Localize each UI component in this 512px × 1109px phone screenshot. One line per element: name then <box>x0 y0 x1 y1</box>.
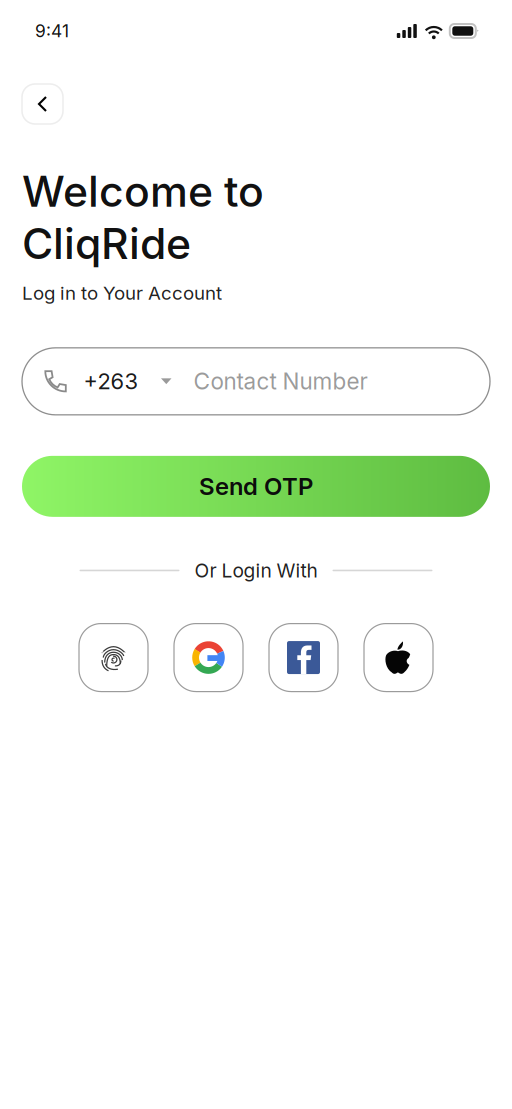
button[interactable]: Send OTP <box>22 456 490 517</box>
staticText: 9:41 <box>35 20 69 41</box>
button[interactable]: Back <box>22 84 63 124</box>
staticText: Contact Number <box>193 368 367 395</box>
staticText: Welcome to <box>22 165 264 217</box>
staticText: Log in to Your Account <box>22 282 222 304</box>
staticText: Send OTP <box>199 472 313 501</box>
button[interactable]: Sign in with Facebook <box>269 624 338 692</box>
button[interactable]: Sign in with Google <box>174 624 243 692</box>
staticText: CliqRide <box>22 218 191 269</box>
staticText: Or Login With <box>194 559 317 582</box>
button[interactable]: Sign in with Apple <box>364 624 433 692</box>
staticText: +263 <box>83 368 138 395</box>
button[interactable]: Sign in with Touch ID <box>79 624 148 692</box>
